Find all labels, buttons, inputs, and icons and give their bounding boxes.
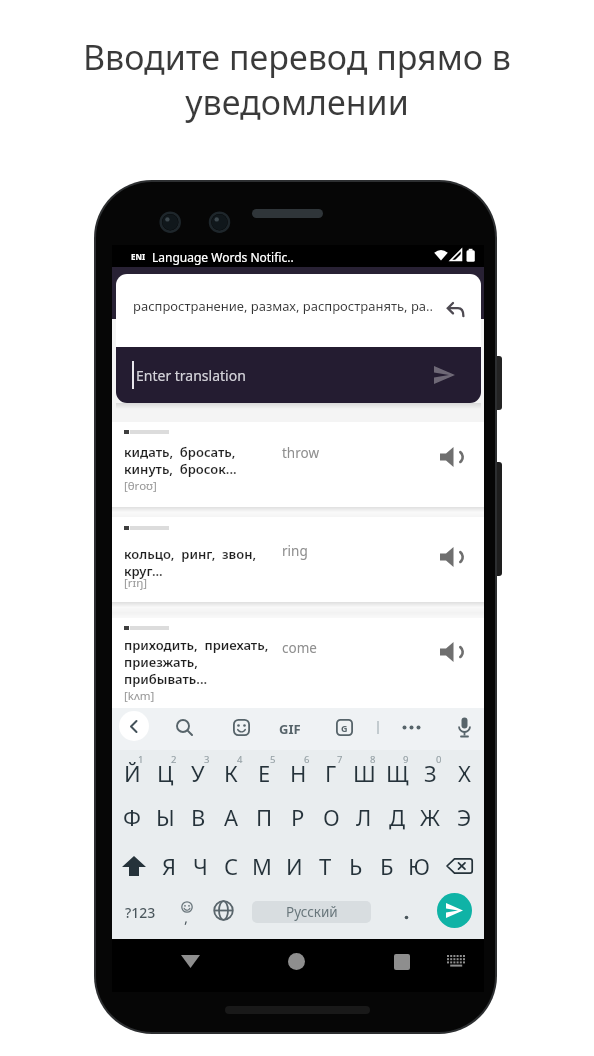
button[interactable]: Ь: [338, 848, 374, 884]
button[interactable]: Ч: [182, 848, 218, 884]
button[interactable]: [440, 642, 464, 662]
staticText: Р: [291, 802, 305, 832]
staticText: 1: [138, 753, 144, 766]
staticText: Й: [124, 758, 141, 788]
staticText: Г: [325, 758, 337, 788]
staticText: Ш: [353, 758, 376, 788]
button[interactable]: [402, 725, 421, 730]
button[interactable]: [447, 302, 464, 317]
staticText: Enter translation: [136, 366, 246, 385]
button[interactable]: Ж: [412, 799, 448, 835]
button[interactable]: Щ: [379, 755, 415, 791]
button[interactable]: G: [336, 719, 353, 736]
staticText: 2: [171, 753, 177, 766]
staticText: кидать, бросать, кинуть, бросок...: [124, 443, 237, 478]
staticText: О: [323, 802, 340, 832]
button[interactable]: Я: [151, 848, 187, 884]
button[interactable]: З: [412, 755, 448, 791]
button[interactable]: К: [213, 755, 249, 791]
button[interactable]: [447, 955, 466, 969]
button[interactable]: [440, 447, 464, 467]
button[interactable]: Б: [369, 848, 405, 884]
button[interactable]: приходить, приехать, приезжать, прибыват…: [112, 618, 484, 708]
button[interactable]: Л: [346, 799, 382, 835]
staticText: Ь: [349, 851, 363, 881]
staticText: В: [191, 802, 206, 832]
staticText: У: [191, 758, 205, 788]
button[interactable]: А: [213, 799, 249, 835]
button[interactable]: распространение, размах, распространять,…: [116, 274, 481, 403]
staticText: 7: [337, 753, 343, 766]
button[interactable]: [288, 953, 305, 970]
staticText: Вводите перевод прямо в уведомлении: [0, 34, 594, 125]
button[interactable]: Д: [379, 799, 415, 835]
staticText: распространение, размах, распространять,…: [133, 297, 435, 317]
staticText: 4: [237, 753, 243, 766]
button[interactable]: Ф: [114, 799, 150, 835]
button[interactable]: Ю: [401, 848, 437, 884]
button[interactable]: Э: [446, 799, 482, 835]
button[interactable]: Ц: [147, 755, 183, 791]
staticText: [θroʊ]: [124, 478, 157, 494]
staticText: Language Words Notific..: [152, 249, 294, 265]
button[interactable]: [446, 858, 473, 874]
staticText: Н: [290, 758, 307, 788]
button[interactable]: И: [276, 848, 312, 884]
button[interactable]: [434, 366, 455, 384]
staticText: приходить, приехать, приезжать, прибыват…: [124, 636, 269, 688]
button[interactable]: П: [246, 799, 282, 835]
staticText: 8: [370, 753, 376, 766]
staticText: 5: [270, 753, 276, 766]
button[interactable]: У: [180, 755, 216, 791]
button[interactable]: [457, 717, 472, 738]
staticText: 6: [304, 753, 310, 766]
staticText: [rɪŋ]: [124, 575, 148, 591]
staticText: Ф: [123, 802, 141, 832]
button[interactable]: [181, 955, 200, 968]
staticText: Ю: [408, 851, 430, 881]
button[interactable]: [394, 954, 410, 970]
staticText: GIF: [279, 720, 301, 738]
button[interactable]: Х: [446, 755, 482, 791]
staticText: 0: [436, 753, 442, 766]
button[interactable]: [119, 711, 149, 741]
staticText: Е: [258, 758, 271, 788]
staticText: М: [252, 851, 272, 881]
staticText: G: [341, 722, 348, 734]
button[interactable]: В: [180, 799, 216, 835]
button[interactable]: М: [244, 848, 280, 884]
staticText: 3: [204, 753, 210, 766]
button[interactable]: Е: [246, 755, 282, 791]
staticText: 9: [403, 753, 409, 766]
button[interactable]: [213, 900, 234, 921]
button[interactable]: [176, 719, 193, 736]
button[interactable]: Г: [313, 755, 349, 791]
staticText: Б: [380, 851, 394, 881]
button[interactable]: Н: [280, 755, 316, 791]
staticText: Щ: [386, 758, 409, 788]
button[interactable]: С: [213, 848, 249, 884]
button[interactable]: Р: [280, 799, 316, 835]
staticText: [kʌm]: [124, 688, 155, 704]
staticText: А: [224, 802, 239, 832]
button[interactable]: [122, 856, 146, 876]
button[interactable]: [233, 719, 250, 736]
button[interactable]: Ш: [346, 755, 382, 791]
staticText: кольцо, ринг, звон, круг...: [124, 545, 257, 580]
staticText: Я: [162, 851, 177, 881]
button[interactable]: Т: [307, 848, 343, 884]
button[interactable]: О: [313, 799, 349, 835]
button[interactable]: кольцо, ринг, звон, круг...: [112, 517, 484, 602]
button[interactable]: Ы: [147, 799, 183, 835]
staticText: Ч: [193, 851, 208, 881]
button[interactable]: [437, 893, 472, 928]
button[interactable]: Русский: [252, 901, 371, 923]
staticText: throw: [282, 444, 320, 462]
staticText: Ц: [157, 758, 174, 788]
button[interactable]: Й: [114, 755, 150, 791]
staticText: К: [224, 758, 238, 788]
button[interactable]: кидать, бросать, кинуть, бросок...: [112, 422, 484, 507]
staticText: З: [424, 758, 437, 788]
staticText: Т: [319, 851, 332, 881]
button[interactable]: [440, 547, 464, 567]
